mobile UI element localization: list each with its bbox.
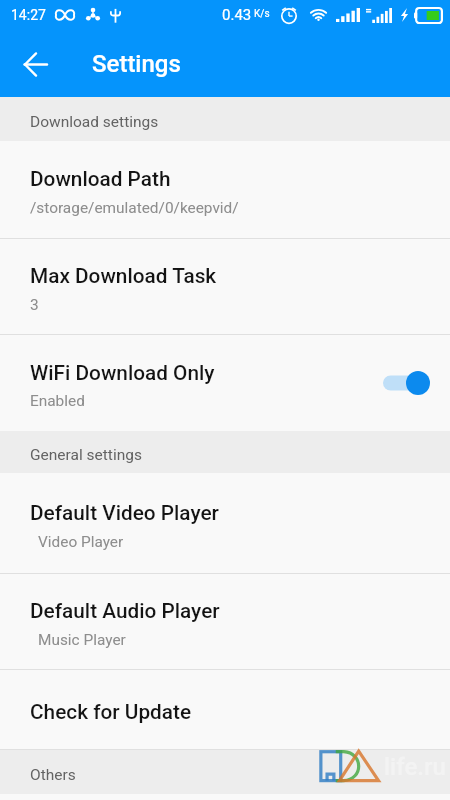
staticText: /storage/emulated/0/keepvid/ [30,199,239,217]
button[interactable]: Download Path [0,141,450,239]
staticText: Music Player [38,631,126,649]
button[interactable]: WiFi Download Only [0,335,450,431]
button[interactable]: General settings [0,431,450,473]
button[interactable]: Check for Update [0,670,450,750]
staticText: Enabled [30,392,85,410]
button[interactable]: Max Download Task [0,239,450,335]
staticText: Max Download Task [30,264,217,288]
button[interactable]: Back [13,42,57,86]
staticText: Check for Update [30,700,192,724]
staticText: WiFi Download Only [30,361,215,385]
staticText: Settings [92,50,181,78]
staticText: Default Video Player [30,501,219,525]
staticText: Download Path [30,167,171,191]
button[interactable]: Default Video Player [0,473,450,574]
button[interactable]: WiFi Download Only toggle [382,362,430,404]
staticText: 3 [30,296,39,314]
staticText: General settings [30,446,142,464]
button[interactable]: Download settings [0,97,450,141]
staticText: 0.43 [222,6,252,24]
staticText: Default Audio Player [30,599,220,623]
staticText: Download settings [30,113,159,131]
staticText: 14:27 [11,7,46,23]
staticText: K/s [254,8,270,20]
button[interactable]: Others [0,750,450,794]
button[interactable]: Default Audio Player [0,574,450,670]
staticText: Video Player [38,533,124,551]
staticText: Others [30,766,76,784]
